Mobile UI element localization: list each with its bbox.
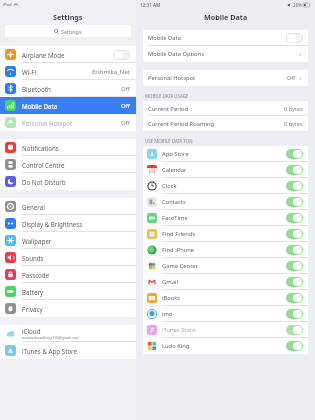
staticText: Airplane Mode [22,51,65,59]
button[interactable]: imo [143,306,308,322]
button[interactable]: App Store [143,146,308,162]
button[interactable]: On [286,181,303,191]
button[interactable]: Control Centre [0,156,136,173]
staticText: General [22,203,45,211]
staticText: iCloud [22,327,41,335]
button[interactable]: On [286,341,303,351]
button[interactable]: Current Period [143,101,308,116]
button[interactable]: Privacy [0,300,136,317]
staticText: Off [121,85,130,93]
staticText: 28% [293,2,302,8]
button[interactable]: On [286,165,303,175]
staticText: 0 bytes [284,120,303,128]
staticText: Passcode [22,271,50,279]
staticText: Current Period Roaming [148,120,215,128]
button[interactable]: Notifications [0,139,136,156]
button[interactable]: Find iPhone [143,242,308,258]
staticText: Off [287,74,296,82]
button[interactable]: FaceTime [143,210,308,226]
button[interactable]: On [286,229,303,239]
button[interactable]: On [286,149,303,159]
staticText: Mobile Data [148,34,181,42]
button[interactable]: On [286,213,303,223]
staticText: App Store [162,150,189,158]
staticText: Game Center [162,262,198,270]
staticText: Battery [22,288,44,296]
button[interactable]: Airplane Mode [0,46,136,63]
staticText: Control Centre [22,161,65,169]
button[interactable]: Mobile Data [0,97,136,114]
button[interactable]: General [0,198,136,215]
button[interactable]: Wi-Fi [0,63,136,80]
button[interactable]: On [286,309,303,319]
button[interactable]: Calendar [143,162,308,178]
staticText: Find iPhone [162,246,195,254]
staticText: imo [162,310,173,318]
staticText: iBooks [162,294,181,302]
staticText: Current Period [148,105,189,113]
button[interactable]: On [286,261,303,271]
button[interactable]: Settings [5,25,131,37]
button[interactable]: On [286,245,303,255]
button[interactable]: Personal Hotspot [143,70,308,86]
staticText: FaceTime [162,214,188,222]
staticText: Gmail [162,278,178,286]
staticText: Settings [61,28,82,35]
staticText: Settings [53,12,83,22]
button[interactable]: Game Center [143,258,308,274]
button[interactable]: On [286,277,303,287]
staticText: Calendar [162,166,187,174]
button[interactable]: Passcode [0,266,136,283]
button[interactable]: Find Friends [143,226,308,242]
staticText: Off [121,102,130,110]
button[interactable]: Mobile Data [143,30,308,46]
staticText: Ludo King [162,342,190,350]
button[interactable]: On [286,325,303,335]
staticText: Find Friends [162,230,196,238]
button[interactable]: Off [286,33,303,43]
staticText: iTunes & App Store [22,347,78,355]
button[interactable]: Display & Brightness [0,215,136,232]
button[interactable]: iCloud [0,325,136,342]
button[interactable]: iTunes & App Store [0,342,136,359]
staticText: Notifications [22,144,59,152]
button[interactable]: Ludo King [143,338,308,354]
staticText: Contacts [162,198,186,206]
button[interactable]: Battery [0,283,136,300]
staticText: Personal Hotspot [22,119,73,127]
staticText: Bluetooth [22,85,51,93]
staticText: Wallpaper [22,237,52,245]
staticText: iPad [3,2,12,8]
button[interactable]: Do Not Disturb [0,173,136,190]
button[interactable]: Gmail [143,274,308,290]
staticText: Personal Hotspot [148,74,196,82]
button[interactable]: Contacts [143,194,308,210]
button[interactable]: Mobile Data Options [143,46,308,62]
staticText: Mobile Data [204,12,248,22]
button[interactable]: Personal Hotspot [0,114,136,131]
button[interactable]: Wallpaper [0,232,136,249]
button[interactable]: Bluetooth [0,80,136,97]
staticText: Eishmika_Net [92,68,130,76]
staticText: Mobile Data Options [148,50,204,58]
staticText: 12:31 AM [140,2,161,8]
staticText: Wi-Fi [22,68,37,76]
staticText: Do Not Disturb [22,178,66,186]
staticText: 0 bytes [284,105,303,113]
button[interactable]: Current Period Roaming [143,116,308,131]
staticText: Sounds [22,254,44,262]
button[interactable]: iBooks [143,290,308,306]
staticText: iTunes Store [162,326,196,334]
button[interactable]: Clock [143,178,308,194]
staticText: asmitashowdhury310@gmail.com [22,335,80,340]
staticText: MOBILE DATA USAGE [145,93,189,99]
staticText: Display & Brightness [22,220,83,228]
button[interactable]: Sounds [0,249,136,266]
button[interactable]: On [286,293,303,303]
button[interactable]: On [286,197,303,207]
staticText: Off [121,119,130,127]
staticText: USE MOBILE DATA FOR: [145,138,194,144]
button[interactable]: iTunes Store [143,322,308,338]
staticText: Mobile Data [22,102,58,110]
button[interactable]: Off [113,50,130,60]
